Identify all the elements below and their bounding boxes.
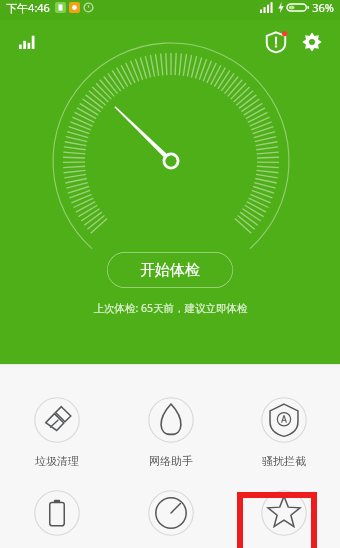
staticText: 垃圾清理 <box>35 454 79 468</box>
staticText: 网络助手 <box>149 454 193 468</box>
button[interactable]: 省电优化 <box>0 488 114 548</box>
button[interactable]: 应用评分 <box>227 488 340 548</box>
staticText: 36% <box>312 0 334 15</box>
button[interactable]: Statistics <box>10 25 44 59</box>
staticText: 开始体检 <box>140 261 200 280</box>
button[interactable]: 垃圾清理 <box>0 395 114 470</box>
staticText: 骚扰拦截 <box>262 454 306 468</box>
staticText: 下午4:46 <box>6 0 50 15</box>
button[interactable]: 手机加速 <box>114 488 227 548</box>
button[interactable]: 骚扰拦截 <box>227 395 340 470</box>
button[interactable]: 开始体检 <box>107 252 233 288</box>
button[interactable]: Settings <box>294 24 330 60</box>
button[interactable]: 网络助手 <box>114 395 227 470</box>
staticText: 上次体检: 65天前，建议立即体检 <box>93 301 248 315</box>
button[interactable]: Security alerts <box>258 24 294 60</box>
